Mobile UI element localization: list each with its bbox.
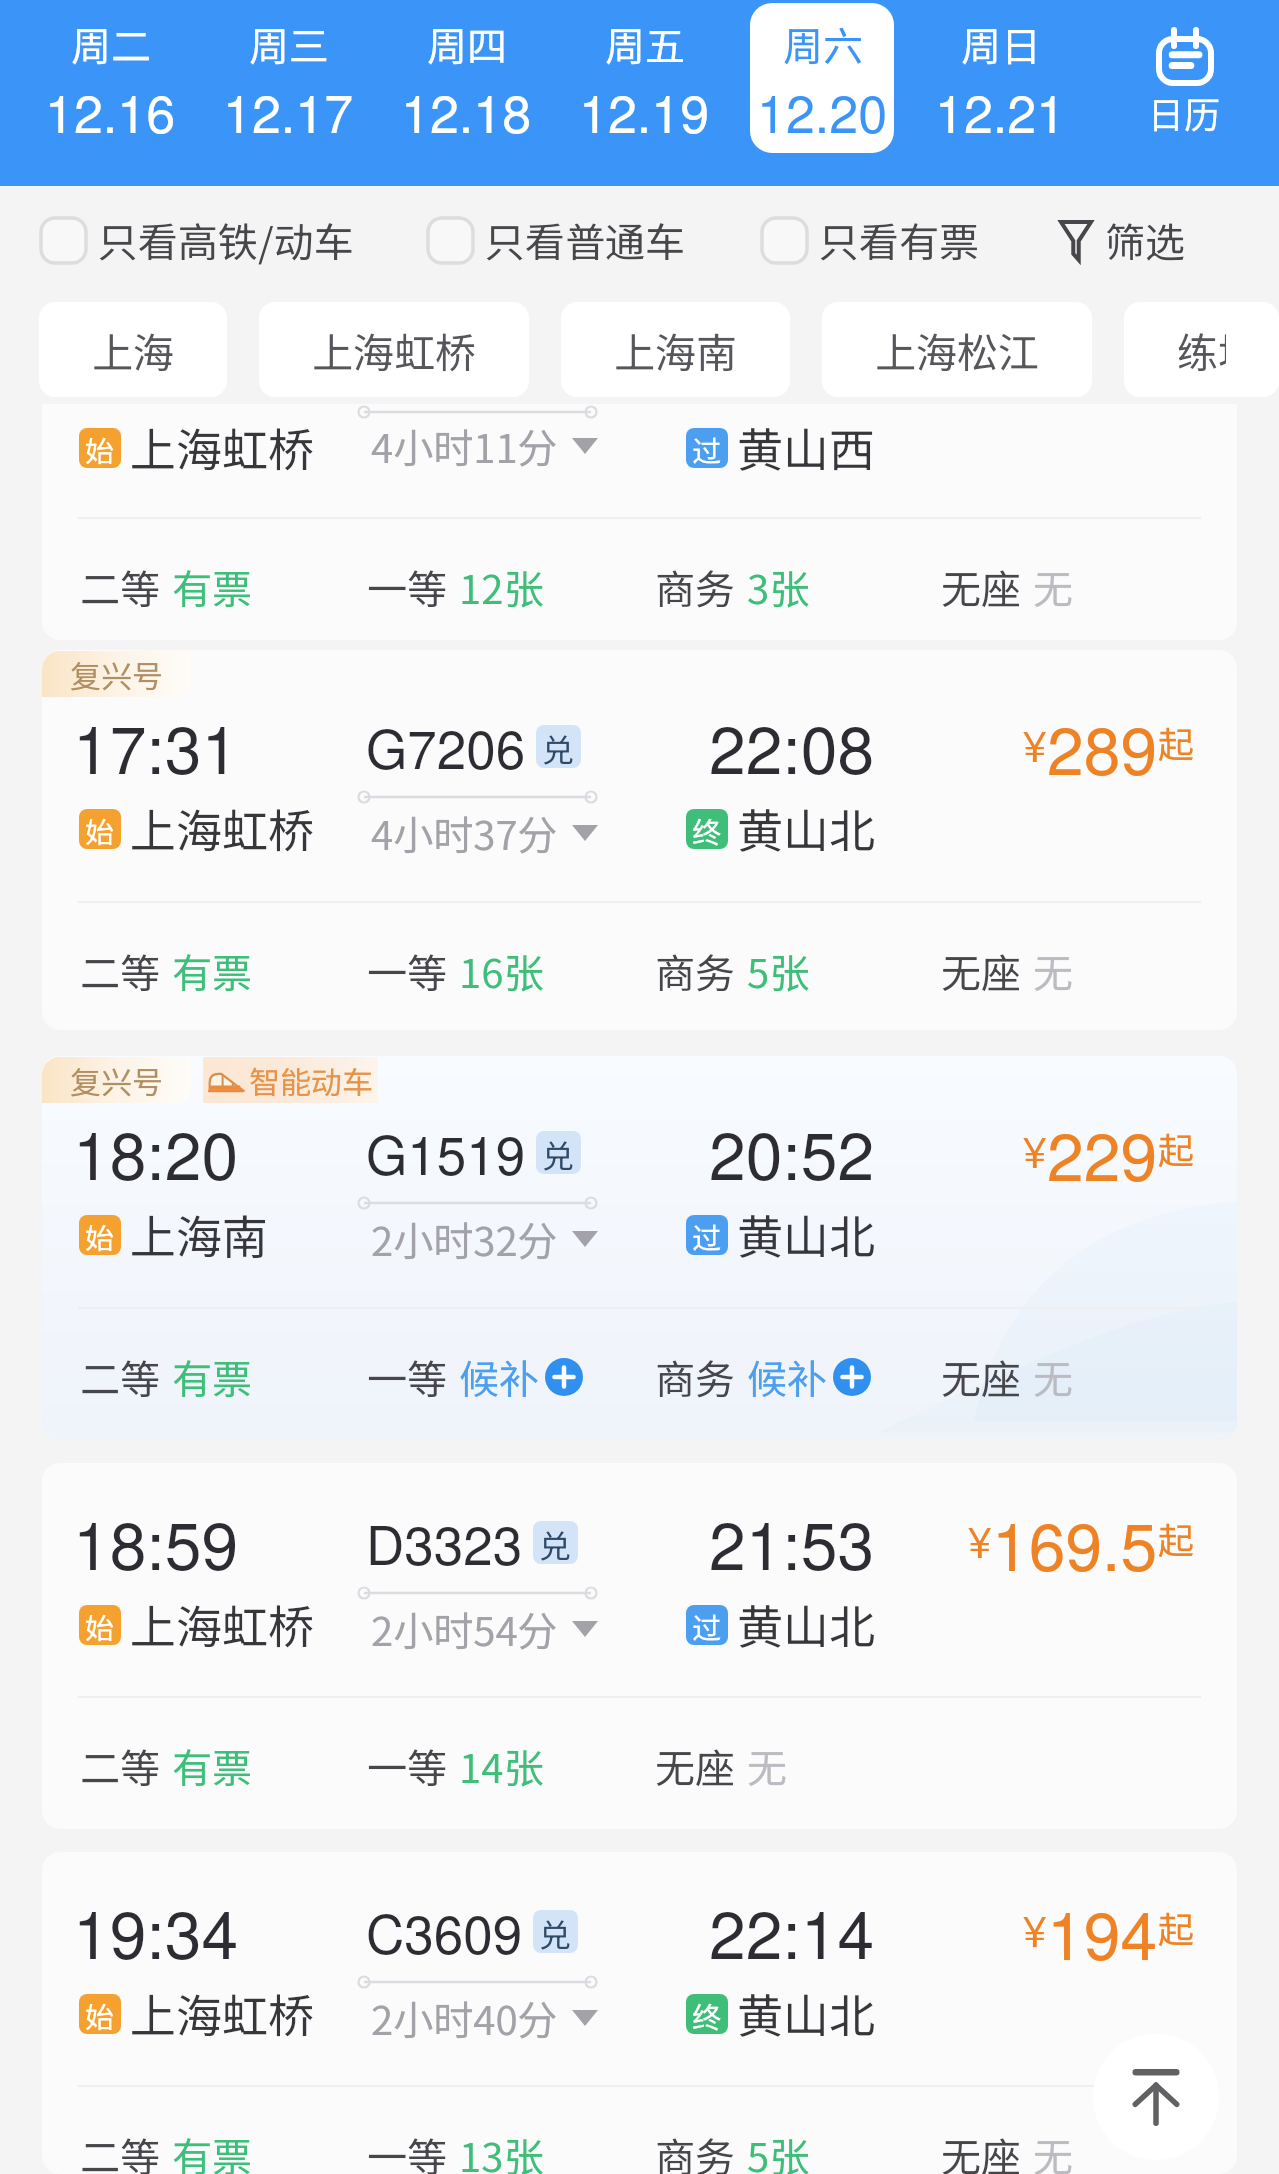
button[interactable]: 周四	[394, 3, 538, 153]
staticText: 上海虹桥	[130, 1980, 314, 2047]
staticText: 兑	[539, 1910, 572, 1953]
staticText: 过	[692, 1605, 722, 1645]
staticText: 有票	[172, 1737, 252, 1795]
button[interactable]: 始	[42, 404, 1237, 640]
staticText: 无	[1033, 558, 1073, 616]
button[interactable]: 只看高铁/动车	[41, 211, 354, 269]
staticText: 无座	[655, 1737, 735, 1795]
staticText: 周日	[961, 15, 1041, 73]
staticText: 起	[1158, 1901, 1195, 1953]
staticText: G1519	[366, 1114, 526, 1190]
button[interactable]: 上海虹桥	[259, 302, 529, 397]
staticText: 二等	[80, 1737, 160, 1795]
staticText: D3323	[366, 1504, 523, 1580]
staticText: 起	[1158, 1122, 1195, 1174]
staticText: 复兴号	[70, 1058, 163, 1103]
staticText: 候补	[459, 1348, 539, 1406]
staticText: 日历	[1148, 86, 1221, 138]
staticText: 黄山北	[737, 1591, 875, 1658]
staticText: 上海南	[614, 320, 737, 379]
staticText: 一等	[367, 2126, 447, 2174]
button[interactable]: 周二	[38, 3, 182, 153]
button[interactable]: 练塘	[1124, 302, 1279, 397]
staticText: 筛选	[1105, 211, 1185, 269]
staticText: 有票	[172, 558, 252, 616]
staticText: 只看有票	[819, 211, 979, 269]
button[interactable]: 18:59	[42, 1463, 1237, 1829]
staticText: ¥	[1023, 1120, 1047, 1180]
staticText: 无座	[941, 558, 1021, 616]
staticText: 候补	[747, 1348, 827, 1406]
staticText: 一等	[367, 942, 447, 1000]
button[interactable]: 周三	[216, 3, 360, 153]
staticText: 只看高铁/动车	[98, 211, 354, 269]
button[interactable]: 只看有票	[762, 211, 979, 269]
button[interactable]: 上海	[39, 302, 227, 397]
staticText: 2小时54分	[371, 1600, 558, 1658]
staticText: 17:31	[73, 698, 239, 793]
staticText: 4小时37分	[371, 804, 558, 862]
staticText: 无	[1033, 1348, 1073, 1406]
staticText: 20:52	[709, 1104, 875, 1199]
staticText: 周四	[427, 15, 507, 73]
staticText: 一等	[367, 558, 447, 616]
staticText: 黄山北	[737, 795, 875, 862]
button[interactable]: 回到顶部	[1093, 2034, 1219, 2160]
button[interactable]: 上海南	[561, 302, 790, 397]
staticText: 周六	[783, 15, 863, 73]
staticText: 兑	[542, 725, 575, 768]
staticText: 12.16	[45, 73, 176, 147]
staticText: 无	[1033, 942, 1073, 1000]
button[interactable]: 只看普通车	[428, 211, 685, 269]
staticText: 上海虹桥	[130, 795, 314, 862]
staticText: 始	[85, 1215, 115, 1255]
staticText: 16张	[459, 942, 544, 1000]
staticText: 商务	[655, 942, 735, 1000]
staticText: 起	[1158, 716, 1195, 768]
staticText: 黄山北	[737, 1201, 875, 1268]
staticText: 289	[1047, 699, 1158, 794]
staticText: 2小时32分	[371, 1210, 558, 1268]
button[interactable]: 19:34	[42, 1852, 1237, 2174]
staticText: 2小时40分	[371, 1989, 558, 2047]
staticText: 终	[692, 1994, 722, 2034]
staticText: 二等	[80, 558, 160, 616]
staticText: 13张	[459, 2126, 544, 2174]
staticText: 周二	[71, 15, 151, 73]
staticText: 黄山北	[737, 1980, 875, 2047]
staticText: 周三	[249, 15, 329, 73]
staticText: 始	[85, 1605, 115, 1645]
staticText: 商务	[655, 558, 735, 616]
button[interactable]: 复兴号	[42, 1056, 1237, 1440]
staticText: 5张	[747, 942, 810, 1000]
button[interactable]: 筛选	[1059, 211, 1185, 269]
button[interactable]: 日历	[1089, 0, 1279, 155]
staticText: 169.5	[992, 1495, 1158, 1590]
staticText: 12张	[459, 558, 544, 616]
button[interactable]: 复兴号	[42, 650, 1237, 1030]
button[interactable]: 周六	[750, 3, 894, 153]
staticText: 过	[692, 428, 722, 468]
staticText: ¥	[1023, 714, 1047, 774]
staticText: C3609	[366, 1893, 523, 1969]
staticText: 194	[1047, 1884, 1158, 1979]
staticText: 22:08	[709, 698, 875, 793]
staticText: 练塘	[1177, 320, 1226, 379]
staticText: 4小时11分	[371, 417, 558, 475]
staticText: 12.21	[935, 73, 1066, 147]
staticText: 起	[1158, 1512, 1195, 1564]
staticText: 二等	[80, 2126, 160, 2174]
button[interactable]: 周五	[572, 3, 716, 153]
button[interactable]: 周日	[928, 3, 1072, 153]
staticText: 始	[85, 1994, 115, 2034]
button[interactable]: 上海松江	[822, 302, 1092, 397]
staticText: 一等	[367, 1348, 447, 1406]
staticText: 上海	[92, 320, 174, 379]
staticText: 兑	[542, 1131, 575, 1174]
staticText: 14张	[459, 1737, 544, 1795]
staticText: 18:59	[73, 1494, 239, 1589]
staticText: 上海松江	[875, 320, 1039, 379]
staticText: 无	[747, 1737, 787, 1795]
staticText: 21:53	[709, 1494, 875, 1589]
staticText: 黄山西	[737, 414, 875, 481]
